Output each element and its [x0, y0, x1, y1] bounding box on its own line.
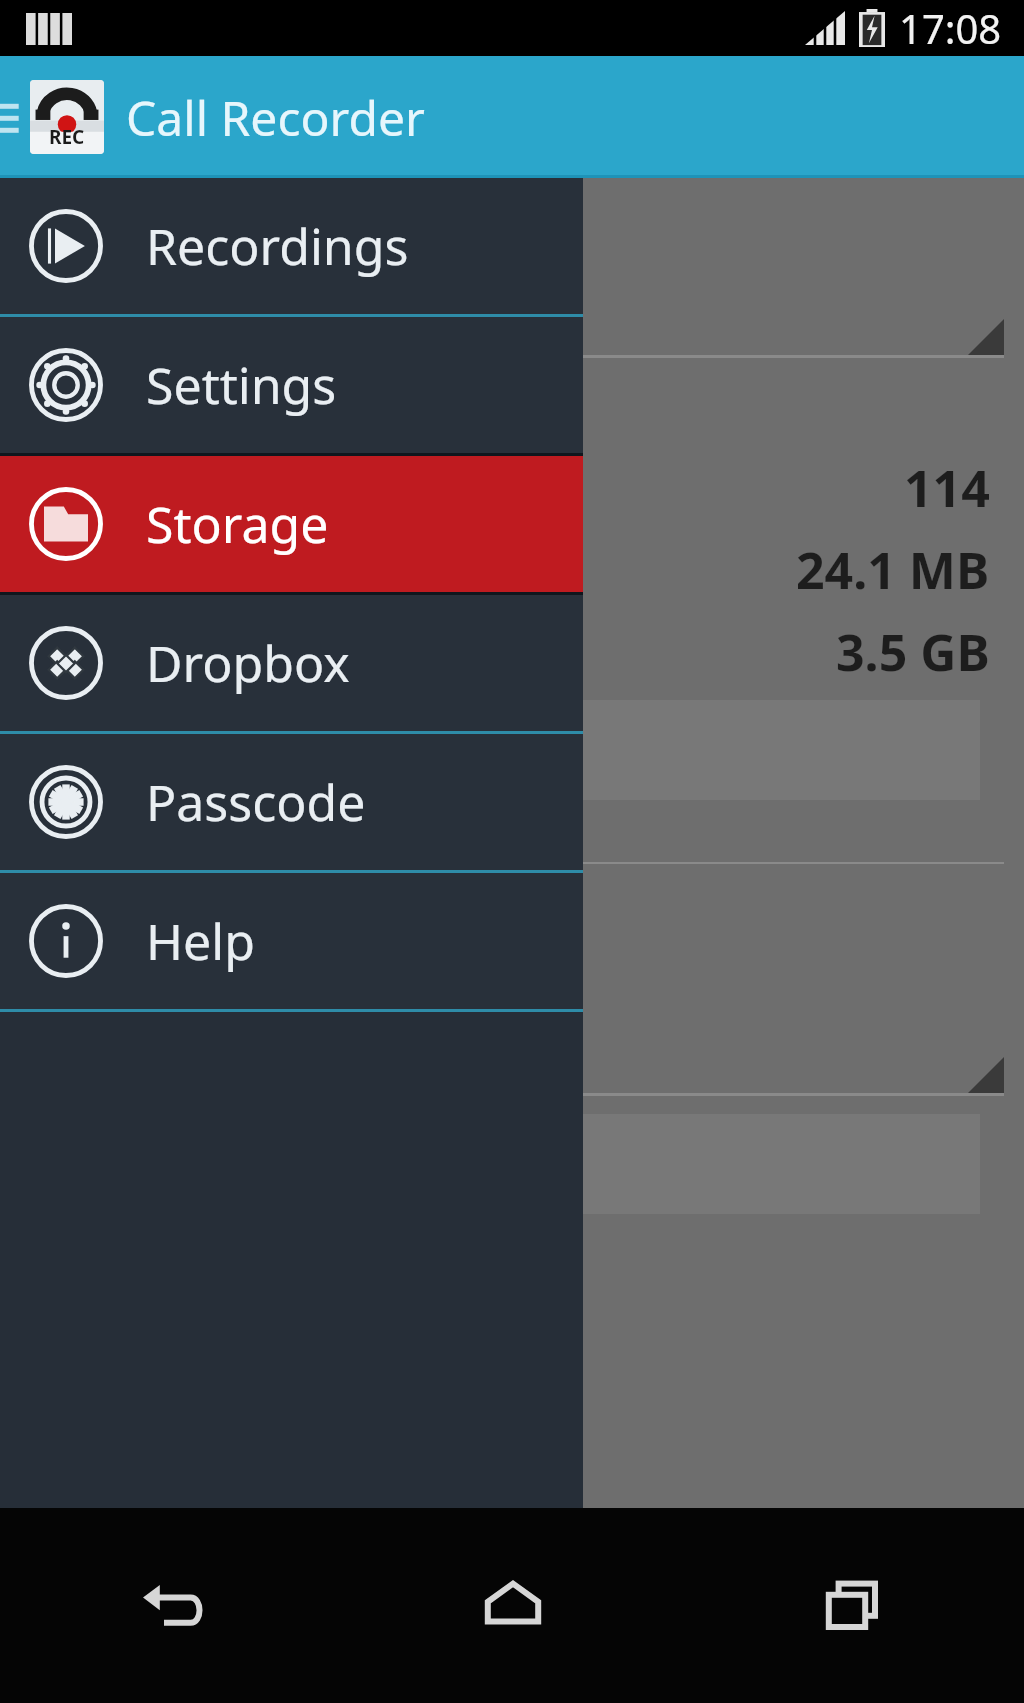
staticText: REC: [49, 124, 85, 150]
button[interactable]: Recordings: [0, 178, 583, 314]
button[interactable]: Delete all recordings: [20, 700, 980, 800]
staticText: Dropbox: [146, 629, 350, 697]
staticText: Call Recorder: [126, 85, 425, 150]
button[interactable]: Settings: [0, 317, 583, 453]
button[interactable]: Back: [0, 1508, 342, 1703]
staticText: Recordings: [146, 212, 409, 280]
staticText: 3.5 GB: [836, 618, 990, 686]
button[interactable]: Dropbox: [0, 595, 583, 731]
staticText: Passcode: [146, 768, 366, 836]
staticText: Delete all recordings: [44, 716, 558, 784]
staticText: Settings: [146, 351, 337, 419]
staticText: 24.1 MB: [796, 536, 990, 604]
button[interactable]: Help: [0, 873, 583, 1009]
button[interactable]: Recent apps: [683, 1508, 1024, 1703]
staticText: 114: [904, 454, 990, 522]
button[interactable]: Open navigation drawer: [0, 87, 34, 147]
button[interactable]: Storage: [0, 456, 583, 592]
button[interactable]: Passcode: [0, 734, 583, 870]
staticText: 17:08: [899, 1, 1002, 55]
button[interactable]: Delete now: [20, 1114, 980, 1214]
staticText: Help: [146, 907, 255, 975]
staticText: Storage: [146, 490, 329, 558]
button[interactable]: Home: [342, 1508, 683, 1703]
